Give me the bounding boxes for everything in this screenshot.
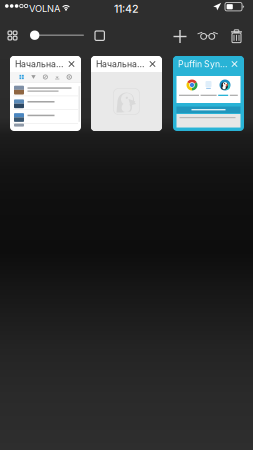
staticText: 11:42 xyxy=(114,2,139,15)
button[interactable]: Grid view xyxy=(8,31,17,40)
button[interactable]: Tab Начальная xyxy=(10,56,81,131)
button[interactable]: Tab Puffin Sync xyxy=(173,56,244,131)
button[interactable]: Incognito mode xyxy=(199,31,216,40)
staticText: Начальна… xyxy=(15,59,63,69)
staticText: Puffin Syn… xyxy=(178,59,227,69)
button[interactable]: Close tab xyxy=(65,56,78,72)
button[interactable]: Close all tabs xyxy=(231,29,242,43)
button[interactable]: Single tab view xyxy=(95,31,104,40)
button[interactable]: Close tab xyxy=(228,56,241,72)
button[interactable]: Tab Начальная xyxy=(91,56,162,131)
staticText: Начальна… xyxy=(96,59,144,69)
staticText: VOLNA xyxy=(29,3,60,14)
button[interactable]: New tab xyxy=(172,28,188,44)
button[interactable]: Close tab xyxy=(146,56,159,72)
